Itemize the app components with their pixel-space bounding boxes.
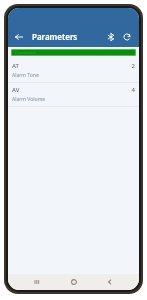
- button[interactable]: Back: [12, 30, 26, 44]
- button[interactable]: Connected: [12, 50, 135, 55]
- button[interactable]: Recent apps: [29, 274, 45, 290]
- staticText: Parameters: [32, 31, 78, 42]
- staticText: 2: [131, 62, 135, 70]
- staticText: Alarm Tone: [12, 72, 39, 79]
- staticText: 4: [131, 86, 135, 94]
- button[interactable]: AT: [8, 59, 139, 82]
- staticText: AT: [12, 62, 19, 70]
- staticText: Alarm Volume: [12, 96, 46, 103]
- button[interactable]: Connect: [103, 29, 119, 45]
- button[interactable]: Refresh: [119, 29, 135, 45]
- button[interactable]: Home: [66, 274, 82, 290]
- button[interactable]: Back: [102, 274, 118, 290]
- staticText: AV: [12, 86, 20, 94]
- button[interactable]: AV: [8, 83, 139, 106]
- staticText: Connected: [15, 50, 36, 55]
